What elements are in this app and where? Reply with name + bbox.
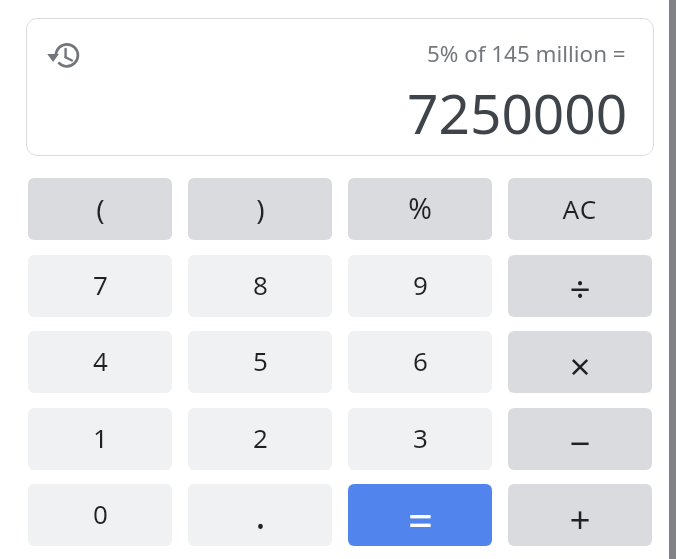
staticText: 9	[413, 267, 428, 302]
button[interactable]: (	[28, 178, 172, 240]
staticText: AC	[562, 191, 598, 227]
staticText: 2	[253, 420, 268, 455]
staticText: %	[408, 189, 432, 228]
button[interactable]: AC	[508, 178, 652, 240]
staticText: 4	[93, 343, 108, 378]
staticText: 5	[253, 343, 268, 378]
staticText: 8	[253, 267, 268, 302]
button[interactable]: History	[45, 38, 83, 74]
button[interactable]: ×	[508, 331, 652, 393]
button[interactable]: 5	[188, 331, 332, 393]
button[interactable]: 6	[348, 331, 492, 393]
staticText: ×	[569, 340, 591, 390]
staticText: 7	[93, 267, 108, 302]
staticText: −	[569, 417, 591, 467]
button[interactable]: %	[348, 178, 492, 240]
button[interactable]: 7	[28, 255, 172, 317]
button[interactable]: 4	[28, 331, 172, 393]
staticText: 5% of 145 million =	[427, 38, 626, 69]
staticText: 3	[413, 420, 428, 455]
button[interactable]: +	[508, 484, 652, 546]
staticText: .	[255, 487, 266, 540]
staticText: (	[96, 190, 105, 228]
button[interactable]: 2	[188, 408, 332, 470]
button[interactable]: =	[348, 484, 492, 546]
button[interactable]: 9	[348, 255, 492, 317]
staticText: 0	[93, 496, 108, 531]
button[interactable]: 3	[348, 408, 492, 470]
staticText: +	[569, 493, 591, 543]
staticText: 6	[413, 343, 428, 378]
staticText: =	[408, 490, 433, 546]
staticText: )	[256, 190, 265, 228]
staticText: ÷	[569, 262, 591, 312]
button[interactable]: −	[508, 408, 652, 470]
button[interactable]: 8	[188, 255, 332, 317]
button[interactable]: 1	[28, 408, 172, 470]
button[interactable]: )	[188, 178, 332, 240]
button[interactable]: .	[188, 484, 332, 546]
staticText: 1	[93, 420, 108, 455]
staticText: 7250000	[407, 75, 628, 150]
button[interactable]: ÷	[508, 255, 652, 317]
button[interactable]: 0	[28, 484, 172, 546]
